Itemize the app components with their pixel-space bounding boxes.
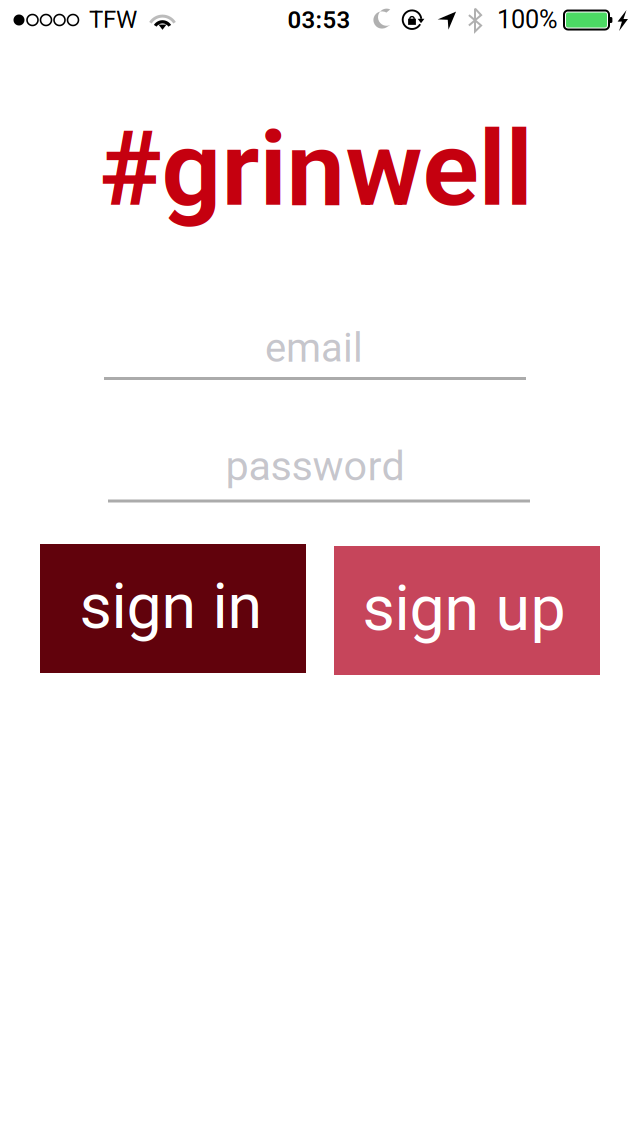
- button[interactable]: sign up: [334, 546, 600, 675]
- staticText: #grinwell: [99, 108, 532, 230]
- button[interactable]: sign in: [40, 544, 306, 673]
- staticText: 100%: [497, 5, 558, 34]
- staticText: email: [265, 325, 363, 371]
- staticText: TFW: [89, 5, 137, 33]
- staticText: sign in: [79, 570, 262, 643]
- staticText: 03:53: [287, 6, 350, 34]
- staticText: sign up: [362, 572, 565, 645]
- staticText: password: [225, 442, 404, 490]
